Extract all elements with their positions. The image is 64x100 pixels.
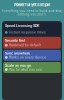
staticText: Powerful yet Simple (14, 2, 50, 7)
button[interactable]: Scale as you go (3, 62, 61, 73)
button[interactable]: Sync anywhere (3, 50, 61, 61)
staticText: Scale as you go (5, 64, 31, 67)
staticText: Everything you need to build and ship, (1, 9, 62, 13)
staticText: Instant response times (9, 31, 46, 34)
staticText: Sync anywhere (5, 51, 30, 55)
staticText: nothing you don't. (17, 13, 46, 16)
staticText: Pay for what you use (9, 68, 42, 71)
staticText: Security first (5, 39, 25, 42)
button[interactable]: Security first (3, 37, 61, 49)
button[interactable]: Speed Licensing SDK (3, 22, 61, 36)
staticText: Works on every device (9, 56, 46, 59)
staticText: Hardened by default (9, 43, 41, 47)
staticText: Speed Licensing SDK (5, 24, 39, 28)
